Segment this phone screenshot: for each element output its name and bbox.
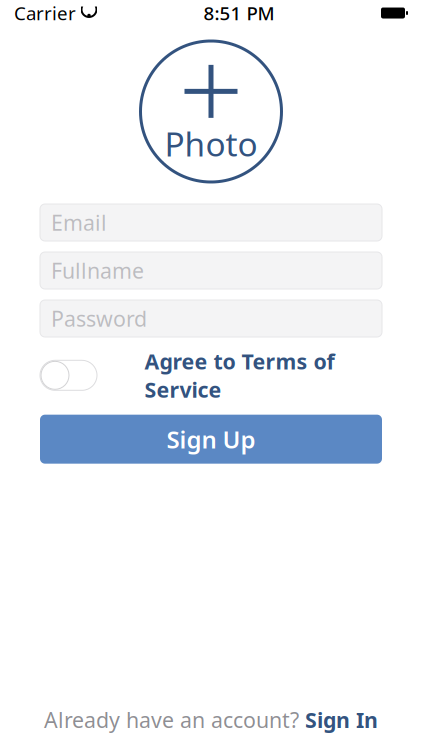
button[interactable]: Agree to Terms of Service toggle bbox=[40, 360, 97, 390]
staticText: 8:51 PM bbox=[203, 1, 274, 25]
staticText: Password bbox=[51, 304, 147, 333]
staticText: Already have an account? bbox=[44, 706, 305, 734]
button[interactable]: Agree to Terms of Service bbox=[144, 347, 334, 404]
staticText: Fullname bbox=[51, 256, 144, 285]
staticText: Agree to Terms of Service bbox=[144, 347, 334, 404]
staticText: Sign In bbox=[305, 706, 378, 734]
staticText: Carrier bbox=[14, 1, 76, 25]
button[interactable]: Already have an account? bbox=[44, 706, 378, 734]
button[interactable]: Sign Up bbox=[40, 415, 382, 464]
button[interactable]: Add Photo bbox=[140, 41, 281, 182]
staticText: Email bbox=[51, 208, 107, 237]
staticText: Sign Up bbox=[166, 423, 255, 455]
staticText: Photo bbox=[164, 121, 257, 166]
